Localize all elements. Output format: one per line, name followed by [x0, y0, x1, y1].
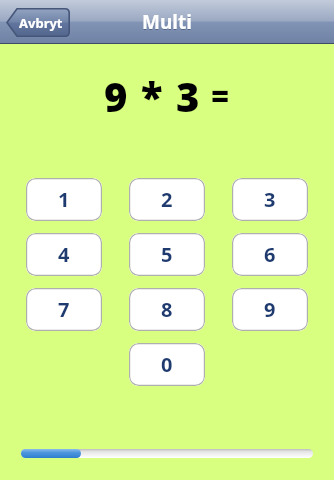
button[interactable]: 5	[129, 233, 205, 276]
staticText: Avbryt	[19, 14, 63, 32]
staticText: 5	[161, 241, 173, 268]
staticText: 9	[104, 69, 128, 123]
button[interactable]: 2	[129, 178, 205, 221]
button[interactable]: 7	[26, 288, 102, 331]
staticText: 6	[264, 241, 276, 268]
staticText: 8	[161, 296, 173, 323]
button[interactable]: 8	[129, 288, 205, 331]
button[interactable]: 1	[26, 178, 102, 221]
staticText: 3	[264, 186, 276, 213]
staticText: 0	[161, 351, 173, 378]
staticText: *	[141, 69, 163, 123]
button[interactable]: 4	[26, 233, 102, 276]
staticText: 2	[161, 186, 173, 213]
button[interactable]: Avbryt	[6, 8, 70, 37]
button[interactable]: 3	[232, 178, 308, 221]
button[interactable]: 9	[232, 288, 308, 331]
staticText: 7	[58, 296, 70, 323]
staticText: =	[211, 75, 230, 117]
button[interactable]: 0	[129, 343, 205, 386]
staticText: Multi	[142, 10, 192, 36]
staticText: 4	[58, 241, 70, 268]
staticText: 9	[264, 296, 276, 323]
staticText: Multi	[142, 9, 192, 35]
staticText: 1	[58, 186, 70, 213]
button[interactable]: 6	[232, 233, 308, 276]
staticText: 3	[176, 69, 200, 123]
